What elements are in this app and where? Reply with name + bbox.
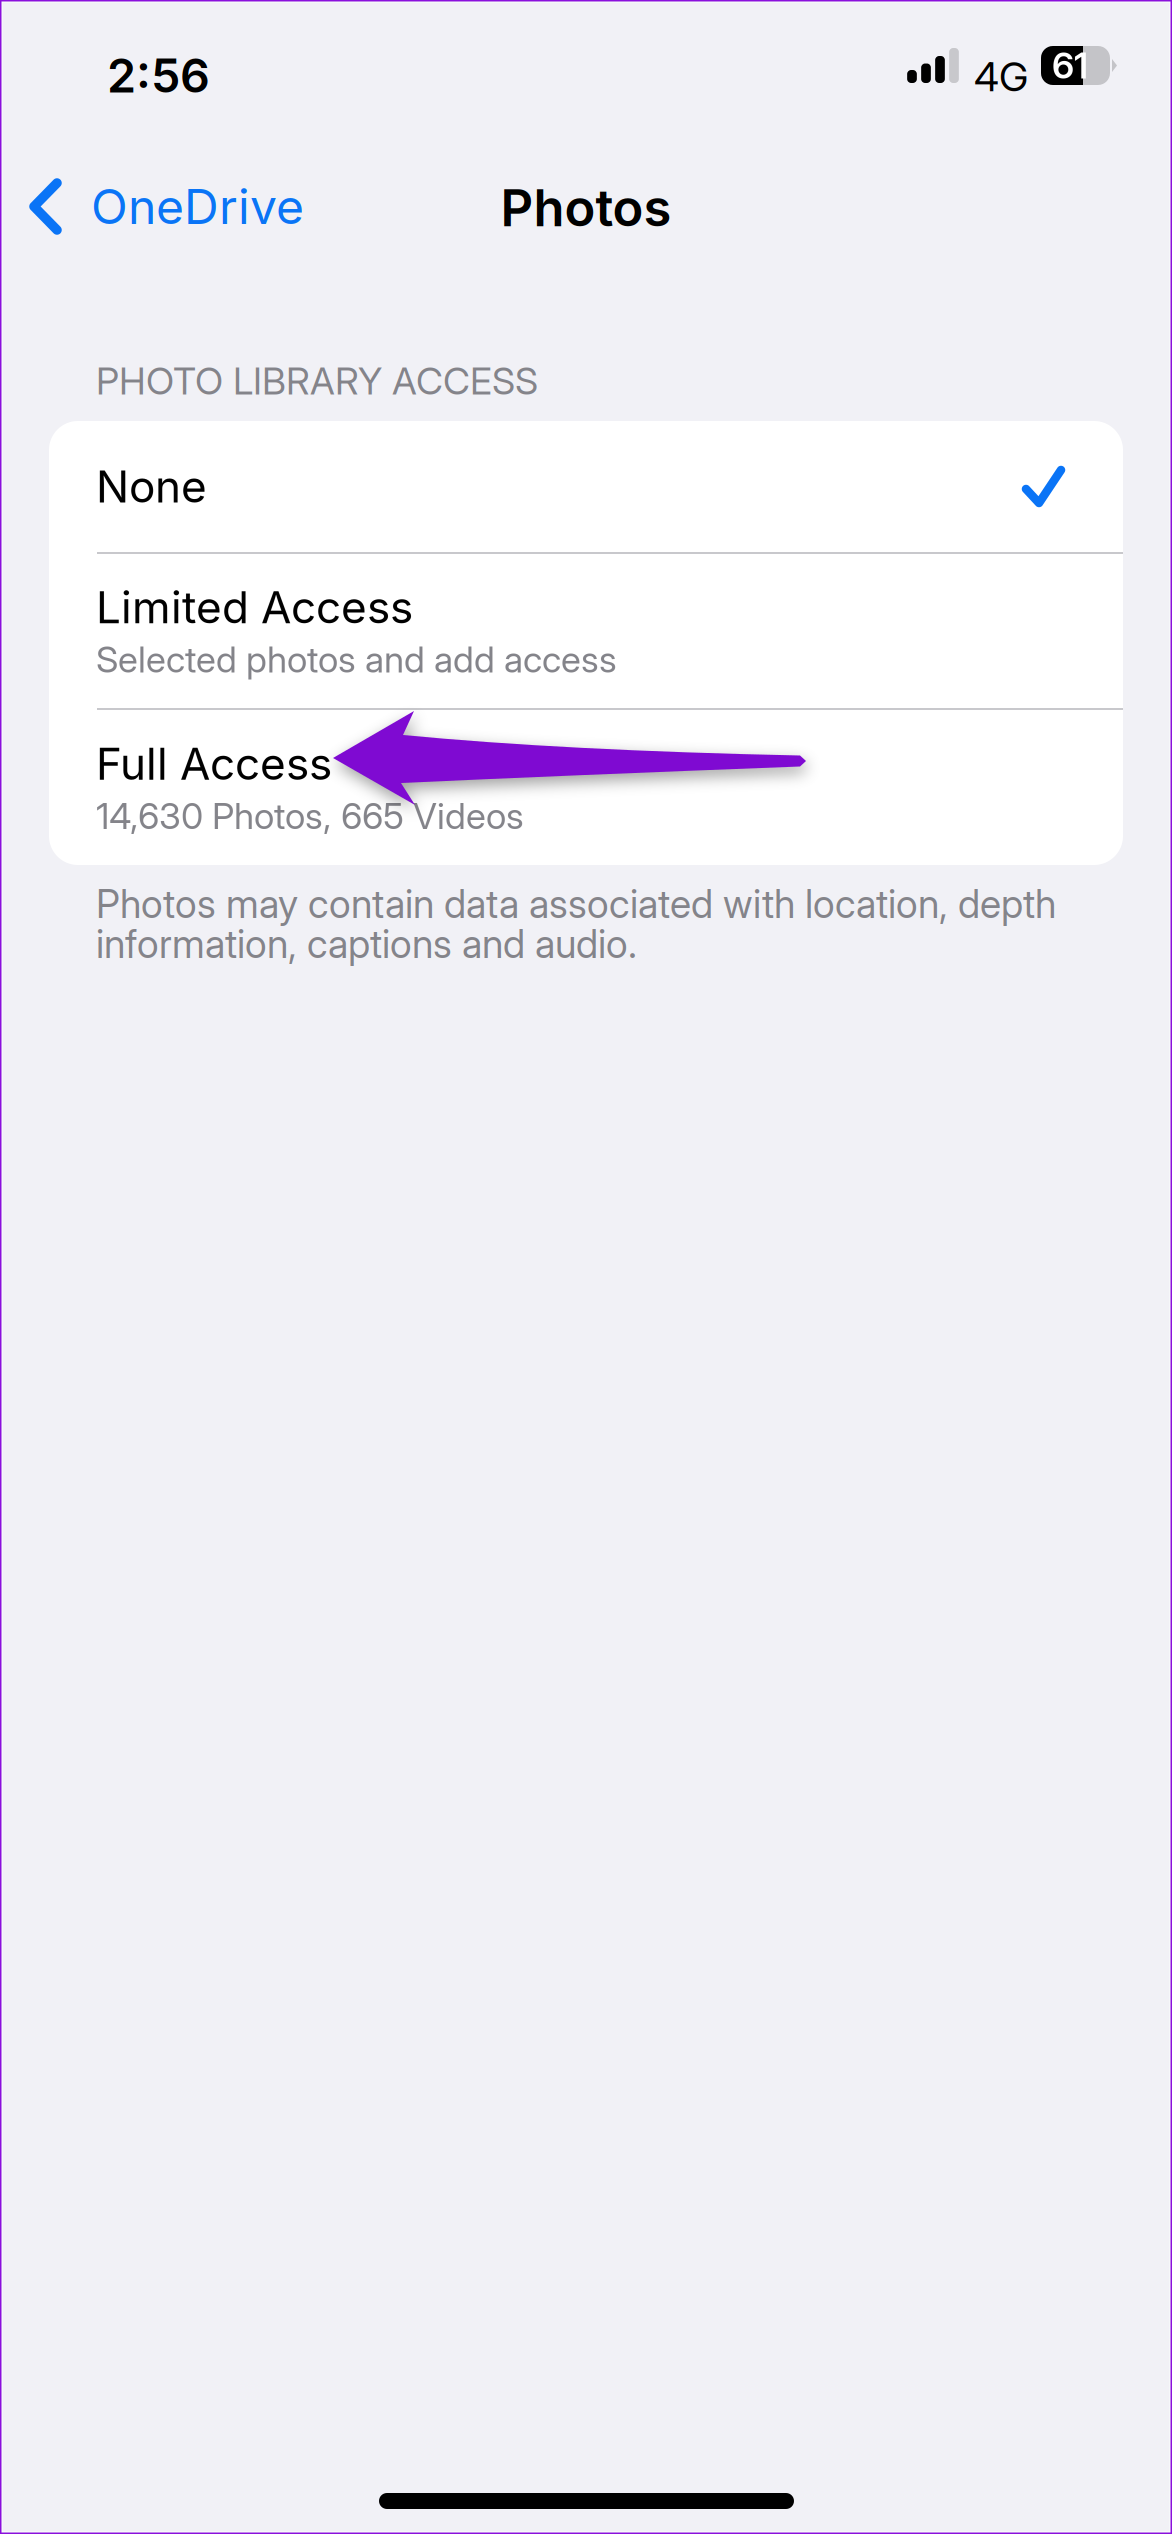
button[interactable]: Limited Access <box>49 554 1123 708</box>
staticText: information, captions and audio. <box>96 921 637 967</box>
staticText: PHOTO LIBRARY ACCESS <box>96 359 538 403</box>
staticText: Selected photos and add access <box>96 638 617 681</box>
button[interactable]: Full Access <box>49 710 1123 865</box>
staticText: None <box>96 460 207 512</box>
button[interactable]: OneDrive <box>0 168 322 245</box>
staticText: 61 <box>1052 44 1088 87</box>
staticText: Full Access <box>96 738 332 790</box>
button[interactable]: None <box>49 421 1123 552</box>
staticText: 2:56 <box>107 48 210 103</box>
staticText: OneDrive <box>91 178 304 235</box>
staticText: Photos may contain data associated with … <box>96 881 1056 927</box>
staticText: 4G <box>974 53 1028 100</box>
staticText: 14,630 Photos, 665 Videos <box>96 795 524 837</box>
staticText: Photos <box>500 178 671 238</box>
staticText: Limited Access <box>96 581 413 633</box>
